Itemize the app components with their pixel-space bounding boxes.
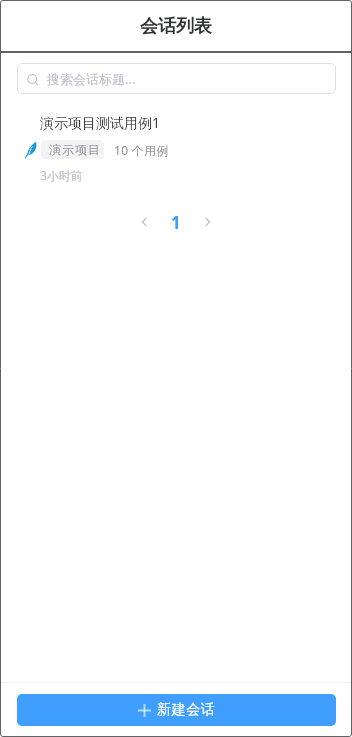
- staticText: 10 个用例: [114, 142, 169, 158]
- staticText: 1: [171, 211, 181, 234]
- button[interactable]: Previous page: [132, 210, 156, 234]
- staticText: 搜索会话标题...: [47, 70, 136, 88]
- staticText: 3小时前: [40, 167, 83, 183]
- button[interactable]: 1: [164, 210, 188, 234]
- staticText: 会话列表: [140, 15, 212, 38]
- staticText: 演示项目: [49, 142, 101, 157]
- button[interactable]: 新建会话: [17, 694, 336, 726]
- button[interactable]: 搜索会话标题...: [17, 63, 336, 94]
- button[interactable]: 演示项目测试用例1: [0, 110, 352, 191]
- button[interactable]: Next page: [196, 210, 220, 234]
- staticText: 新建会话: [157, 701, 216, 719]
- staticText: 演示项目测试用例1: [40, 113, 161, 132]
